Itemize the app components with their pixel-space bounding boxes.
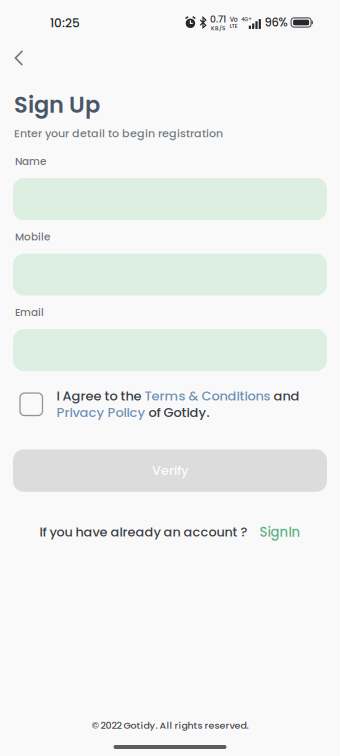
- staticText: 96%: [264, 14, 287, 31]
- staticText: 10:25: [50, 14, 80, 31]
- staticText: Sign Up: [14, 89, 100, 120]
- button[interactable]: Back: [14, 43, 44, 73]
- staticText: Email: [15, 305, 44, 320]
- staticText: 0.71: [210, 13, 226, 26]
- staticText: Vo: [230, 15, 238, 24]
- staticText: I Agree to the Terms & Conditions and Pr…: [56, 387, 299, 421]
- button[interactable]: Agree to terms and conditions: [20, 387, 42, 415]
- staticText: SignIn: [259, 523, 300, 541]
- staticText: © 2022 Gotidy. All rights reserved.: [91, 719, 248, 732]
- staticText: Verify: [152, 462, 188, 479]
- staticText: Mobile: [15, 229, 50, 244]
- staticText: Name: [15, 154, 46, 169]
- button[interactable]: Verify: [13, 449, 327, 492]
- staticText: KB/S: [211, 24, 225, 32]
- staticText: Enter your detail to begin registration: [14, 125, 223, 141]
- staticText: 4G+: [241, 16, 252, 23]
- staticText: If you have already an account ?: [39, 523, 247, 541]
- staticText: LTE: [230, 22, 238, 30]
- button[interactable]: SignIn: [259, 523, 300, 541]
